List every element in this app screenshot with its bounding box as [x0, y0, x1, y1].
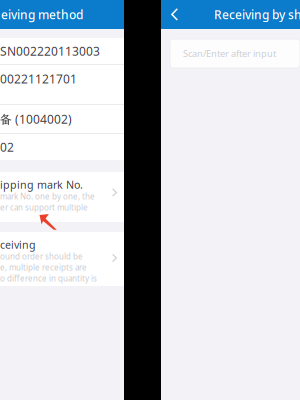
staticText: Scan/Enter after input: [183, 47, 276, 60]
staticText: 备 (1004002): [0, 111, 72, 127]
staticText: mark No. one by one, the: [0, 191, 95, 202]
staticText: 00221121701: [0, 71, 77, 87]
staticText: SN002220113003: [0, 43, 100, 59]
staticText: o difference in quantity is: [0, 273, 97, 284]
staticText: e, multiple receipts are: [0, 262, 87, 273]
staticText: ound order should be: [0, 251, 83, 262]
staticText: Receiving by sh: [214, 6, 300, 22]
staticText: er can support multiple: [0, 202, 88, 213]
staticText: 02: [0, 139, 14, 155]
button[interactable]: ceiving: [0, 232, 124, 286]
staticText: ipping mark No.: [0, 177, 83, 192]
staticText: ceiving: [0, 237, 36, 252]
button[interactable]: Back: [161, 0, 186, 29]
button[interactable]: ipping mark No.: [0, 172, 124, 222]
staticText: eiving method: [1, 6, 83, 22]
button[interactable]: Scan/Enter after input: [170, 39, 300, 68]
